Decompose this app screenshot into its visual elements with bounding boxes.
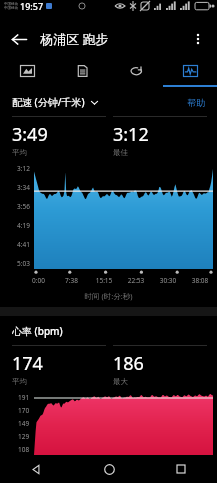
- staticText: 149: [18, 419, 30, 428]
- staticText: 5:03: [17, 259, 30, 268]
- staticText: 30:30: [152, 276, 184, 285]
- staticText: 15:15: [88, 276, 120, 285]
- staticText: 中国移动: [4, 6, 18, 10]
- staticText: 3:34: [17, 183, 30, 192]
- staticText: 3:12: [113, 122, 149, 147]
- staticText: 7:38: [55, 276, 88, 285]
- staticText: 129: [18, 432, 30, 441]
- button[interactable]: Details: [55, 58, 109, 87]
- staticText: 4:19: [17, 221, 30, 230]
- button[interactable]: Summary: [0, 58, 55, 87]
- button[interactable]: Back: [0, 455, 73, 483]
- button[interactable]: Laps: [109, 58, 163, 87]
- staticText: 4:41: [17, 240, 30, 249]
- staticText: 最佳: [113, 148, 128, 157]
- staticText: 174: [12, 351, 43, 376]
- staticText: 3:12: [17, 164, 30, 173]
- button[interactable]: Home: [73, 455, 145, 483]
- staticText: 配速 (分钟/千米): [12, 95, 85, 109]
- staticText: 3:56: [17, 202, 30, 211]
- button[interactable]: 帮助: [187, 97, 205, 108]
- staticText: 心率 (bpm): [12, 324, 63, 338]
- staticText: 108: [18, 445, 30, 454]
- staticText: 中国移动: [4, 2, 18, 6]
- staticText: 38:08: [184, 276, 216, 285]
- button[interactable]: Charts: [163, 58, 217, 87]
- button[interactable]: 配速 (分钟/千米): [12, 95, 99, 109]
- staticText: 平均: [12, 148, 27, 157]
- staticText: 186: [113, 351, 144, 376]
- staticText: 19:57: [20, 0, 44, 12]
- button[interactable]: More options: [179, 20, 217, 58]
- staticText: 平均: [12, 377, 27, 386]
- button[interactable]: Back: [0, 20, 38, 58]
- button[interactable]: Recent apps: [145, 455, 217, 483]
- staticText: 时间 (时:分:秒): [0, 291, 217, 301]
- staticText: 170: [18, 406, 30, 415]
- staticText: 22:53: [120, 276, 152, 285]
- staticText: 191: [18, 393, 30, 402]
- staticText: 3:49: [12, 122, 48, 147]
- staticText: 最大: [113, 377, 128, 386]
- staticText: 杨浦区 跑步: [40, 30, 109, 48]
- staticText: 0:00: [22, 276, 55, 285]
- staticText: 帮助: [187, 97, 205, 108]
